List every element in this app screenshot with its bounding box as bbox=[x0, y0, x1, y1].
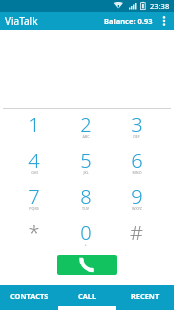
staticText: 2 bbox=[80, 111, 92, 138]
staticText: ABC bbox=[82, 134, 90, 139]
staticText: CALL bbox=[78, 291, 97, 301]
staticText: 7 bbox=[28, 183, 40, 210]
button[interactable]: RECENT bbox=[116, 285, 174, 310]
staticText: WXYZ bbox=[132, 206, 142, 211]
button[interactable]: 8 bbox=[60, 181, 111, 217]
button[interactable]: 4 bbox=[8, 145, 60, 181]
button[interactable]: * bbox=[8, 217, 60, 253]
button[interactable]: # bbox=[111, 217, 162, 253]
staticText: CONTACTS bbox=[10, 291, 49, 301]
staticText: Balance: 0.93 bbox=[104, 16, 153, 26]
staticText: ViaTalk bbox=[5, 14, 38, 28]
button[interactable]: 0 bbox=[60, 217, 111, 253]
button[interactable]: Call bbox=[57, 255, 117, 275]
button[interactable]: CONTACTS bbox=[0, 285, 58, 310]
staticText: * bbox=[28, 219, 40, 246]
button[interactable]: 1 bbox=[8, 109, 60, 145]
staticText: 5 bbox=[80, 147, 92, 174]
staticText: # bbox=[130, 219, 143, 246]
staticText: TUV bbox=[82, 206, 89, 211]
staticText: 23:38 bbox=[150, 1, 170, 11]
button[interactable]: 9 bbox=[111, 181, 162, 217]
staticText: GHI bbox=[31, 170, 38, 175]
button[interactable]: CALL bbox=[58, 285, 116, 310]
button[interactable]: 5 bbox=[60, 145, 111, 181]
staticText: 6 bbox=[131, 147, 143, 174]
staticText: RECENT bbox=[131, 291, 160, 301]
staticText: 0 bbox=[80, 219, 92, 246]
button[interactable]: 3 bbox=[111, 109, 162, 145]
staticText: 8 bbox=[80, 183, 92, 210]
staticText: 1 bbox=[28, 111, 40, 138]
staticText: PQRS bbox=[29, 206, 39, 211]
staticText: JKL bbox=[83, 170, 89, 175]
staticText: + bbox=[84, 242, 87, 247]
button[interactable]: 6 bbox=[111, 145, 162, 181]
button[interactable]: 7 bbox=[8, 181, 60, 217]
button[interactable]: 2 bbox=[60, 109, 111, 145]
button[interactable]: More options bbox=[156, 12, 172, 30]
staticText: 3 bbox=[131, 111, 143, 138]
staticText: 4 bbox=[28, 147, 40, 174]
staticText: 9 bbox=[131, 183, 143, 210]
staticText: DEF bbox=[133, 134, 140, 139]
staticText: MNO bbox=[132, 170, 142, 175]
